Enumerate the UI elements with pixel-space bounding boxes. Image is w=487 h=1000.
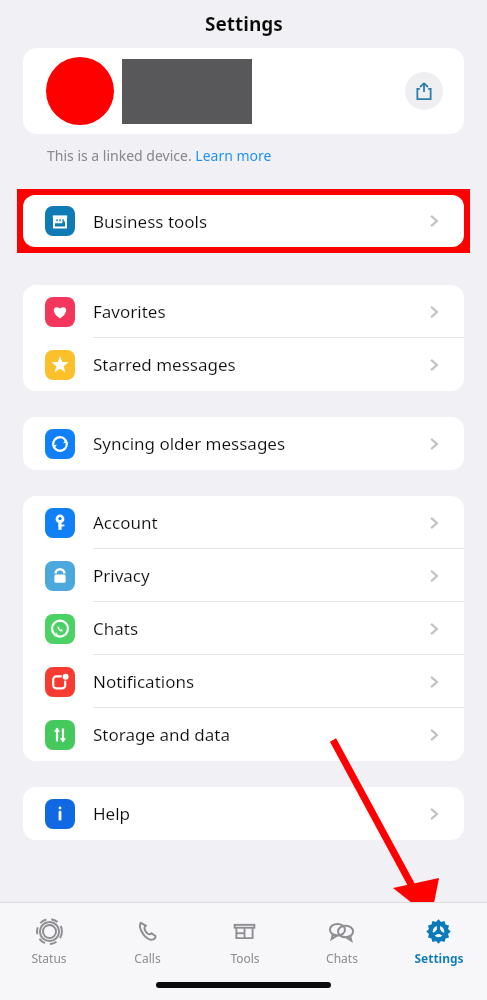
button[interactable]: Calls bbox=[98, 913, 196, 970]
button[interactable]: Storage and data bbox=[23, 708, 464, 761]
staticText: This is a linked device. Learn more bbox=[47, 146, 272, 165]
staticText: Settings bbox=[205, 11, 283, 37]
staticText: Syncing older messages bbox=[93, 432, 286, 455]
staticText: Storage and data bbox=[93, 723, 231, 746]
button[interactable]: Share bbox=[23, 48, 464, 134]
button[interactable]: Chats bbox=[23, 602, 464, 655]
staticText: Account bbox=[93, 511, 158, 534]
button[interactable]: Share bbox=[405, 72, 443, 110]
staticText: Privacy bbox=[93, 564, 150, 587]
staticText: Starred messages bbox=[93, 353, 236, 376]
button[interactable]: Notifications bbox=[23, 655, 464, 708]
button[interactable]: Business tools bbox=[23, 195, 464, 247]
button[interactable]: Chats bbox=[293, 913, 390, 970]
staticText: Chats bbox=[326, 950, 358, 966]
button[interactable]: Status bbox=[0, 913, 98, 970]
staticText: Chats bbox=[93, 617, 139, 640]
button[interactable]: Help bbox=[23, 787, 464, 840]
button[interactable]: Settings bbox=[390, 913, 487, 970]
button[interactable]: Tools bbox=[196, 913, 293, 970]
button[interactable]: Account bbox=[23, 496, 464, 549]
staticText: Business tools bbox=[93, 210, 208, 233]
button[interactable]: Favorites bbox=[23, 285, 464, 338]
staticText: Notifications bbox=[93, 670, 195, 693]
button[interactable]: Syncing older messages bbox=[23, 417, 464, 470]
staticText: Help bbox=[93, 802, 131, 825]
staticText: Favorites bbox=[93, 300, 166, 323]
staticText: Calls bbox=[134, 950, 161, 966]
button[interactable]: Starred messages bbox=[23, 338, 464, 391]
button[interactable]: Privacy bbox=[23, 549, 464, 602]
staticText: Settings bbox=[414, 950, 464, 966]
staticText: Tools bbox=[230, 950, 260, 966]
staticText: Status bbox=[31, 950, 67, 966]
